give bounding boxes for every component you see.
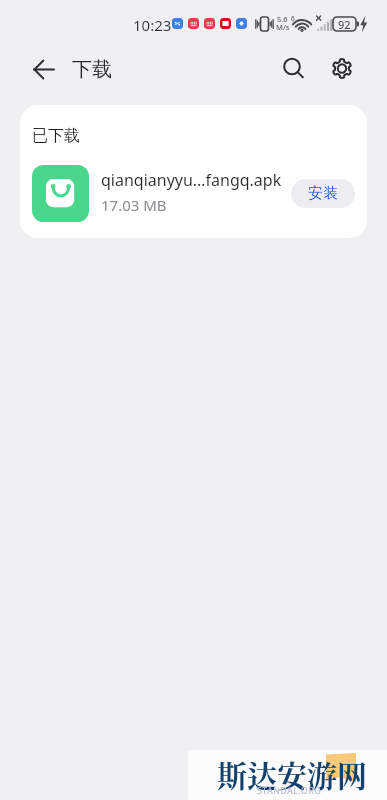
button[interactable]: Search [274, 50, 310, 86]
staticText: 下载 [72, 57, 112, 82]
staticText: 斯达安游网 [217, 752, 367, 795]
staticText: 安装 [308, 184, 338, 203]
staticText: 5.6 [277, 14, 288, 24]
staticText: 10:23 [133, 15, 172, 35]
staticText: 17.03 MB [101, 195, 167, 215]
staticText: qianqianyyu…fangq.apk [101, 169, 282, 191]
button[interactable]: Back [26, 51, 62, 87]
staticText: 6 [291, 14, 295, 23]
button[interactable]: 安装 [291, 179, 355, 208]
staticText: M/s [276, 22, 290, 32]
button[interactable]: Settings [324, 50, 360, 86]
staticText: 92 [338, 17, 351, 32]
staticText: STANDAL.ORG [257, 785, 322, 797]
staticText: 已下载 [32, 126, 80, 146]
